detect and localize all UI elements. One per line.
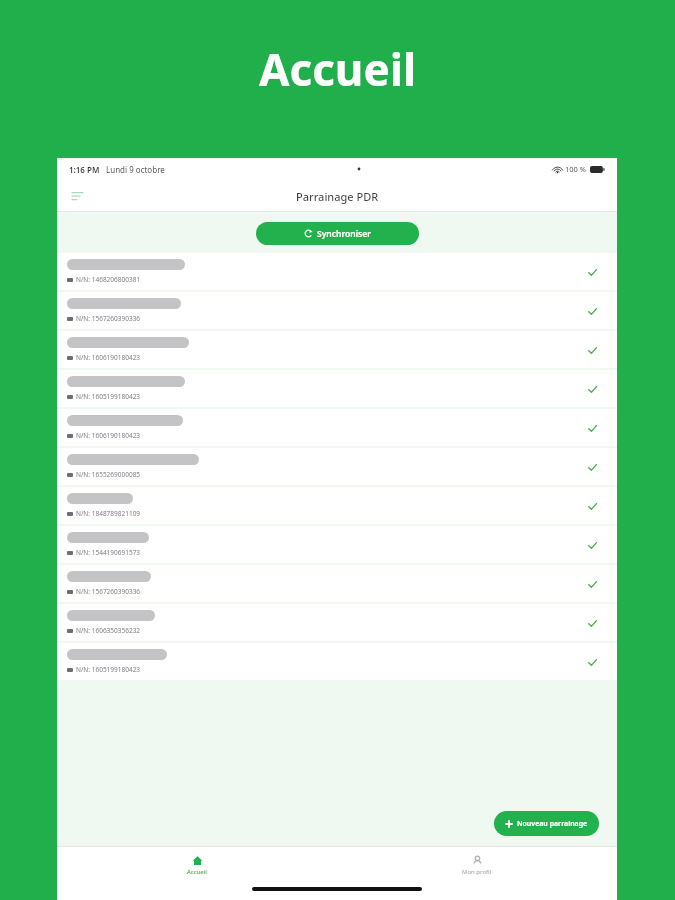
button[interactable]: N/N: 1468206800381 xyxy=(57,253,617,290)
button[interactable]: Synchroniser xyxy=(256,222,419,245)
staticText: N/N: 1606350356232 xyxy=(76,626,141,635)
staticText: N/N: 1655269000085 xyxy=(76,470,141,479)
button[interactable]: N/N: 1605199180423 xyxy=(57,370,617,407)
staticText: 100 % xyxy=(565,164,587,174)
staticText: N/N: 1567260390336 xyxy=(76,587,141,596)
button[interactable]: Menu xyxy=(65,184,89,208)
button[interactable]: N/N: 1605199180423 xyxy=(57,643,617,680)
staticText: Mon profil xyxy=(462,868,492,876)
staticText: N/N: 1468206800381 xyxy=(76,275,141,284)
staticText: Parrainage PDR xyxy=(296,189,379,204)
staticText: Lundi 9 octobre xyxy=(106,164,165,175)
staticText: N/N: 1605199180423 xyxy=(76,392,141,401)
staticText: Nouveau parrainage xyxy=(517,819,588,829)
button[interactable]: Nouveau parrainage xyxy=(494,811,599,836)
button[interactable]: N/N: 1567260390336 xyxy=(57,292,617,329)
staticText: N/N: 1606190180423 xyxy=(76,353,141,362)
button[interactable]: N/N: 1606190180423 xyxy=(57,409,617,446)
staticText: Accueil xyxy=(259,39,416,99)
button[interactable]: N/N: 1606350356232 xyxy=(57,604,617,641)
button[interactable]: N/N: 1848789821109 xyxy=(57,487,617,524)
staticText: N/N: 1605199180423 xyxy=(76,665,141,674)
staticText: 1:16 PM xyxy=(69,164,100,175)
staticText: Synchroniser xyxy=(317,228,371,240)
button[interactable]: Mon profil xyxy=(447,853,507,878)
button[interactable]: N/N: 1544190691573 xyxy=(57,526,617,563)
staticText: N/N: 1848789821109 xyxy=(76,509,141,518)
staticText: N/N: 1567260390336 xyxy=(76,314,141,323)
staticText: Accueil xyxy=(187,868,207,876)
button[interactable]: N/N: 1655269000085 xyxy=(57,448,617,485)
button[interactable]: Accueil xyxy=(167,853,227,878)
staticText: N/N: 1606190180423 xyxy=(76,431,141,440)
button[interactable]: N/N: 1567260390336 xyxy=(57,565,617,602)
staticText: N/N: 1544190691573 xyxy=(76,548,141,557)
button[interactable]: N/N: 1606190180423 xyxy=(57,331,617,368)
